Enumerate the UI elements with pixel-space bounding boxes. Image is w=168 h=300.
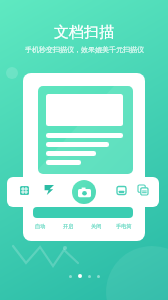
staticText: 手电筒	[116, 223, 132, 230]
button[interactable]: 手电筒	[110, 223, 138, 230]
button[interactable]: Multi page mode	[138, 185, 148, 195]
staticText: 自动	[35, 223, 46, 230]
button[interactable]: Capture photo	[72, 180, 96, 204]
button[interactable]: 开启	[54, 223, 82, 230]
button[interactable]: Flash mode	[44, 185, 54, 195]
staticText: 关闭	[91, 223, 102, 230]
staticText: 开启	[63, 223, 74, 230]
staticText: 文档扫描	[54, 23, 114, 42]
button[interactable]: 关闭	[82, 223, 110, 230]
staticText: 手机秒变扫描仪，效果媲美千元扫描仪	[25, 45, 144, 54]
button[interactable]: Grid overlay	[20, 186, 29, 195]
button[interactable]: Single page mode	[117, 186, 126, 195]
button[interactable]: 自动	[26, 223, 54, 230]
